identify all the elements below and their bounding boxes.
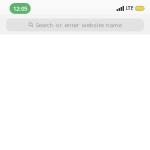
- staticText: 12:05: [13, 4, 27, 12]
- button[interactable]: Search or enter website name: [6, 18, 144, 31]
- staticText: LTE: [126, 5, 134, 12]
- staticText: Search or enter website name: [35, 21, 121, 29]
